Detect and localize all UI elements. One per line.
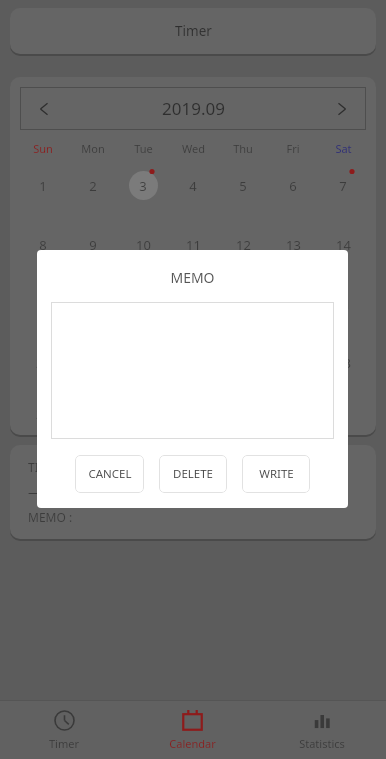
staticText: MEMO: [170, 268, 215, 287]
staticText: 6: [289, 177, 297, 195]
button[interactable]: DELETE: [159, 455, 227, 493]
staticText: —: [28, 484, 41, 500]
staticText: Mon: [81, 141, 105, 156]
staticText: Thu: [233, 141, 253, 156]
staticText: 19: [236, 295, 251, 313]
staticText: 10: [136, 236, 151, 254]
button[interactable]: 22: [18, 333, 68, 392]
staticText: WRITE: [259, 466, 294, 482]
button[interactable]: 16: [68, 274, 118, 333]
button[interactable]: 20: [268, 274, 318, 333]
button[interactable]: Timer: [0, 701, 128, 759]
button[interactable]: Next month: [318, 87, 366, 130]
staticText: Tue: [134, 141, 153, 156]
button[interactable]: 12: [218, 215, 268, 274]
staticText: Timer: [49, 736, 79, 751]
button[interactable]: 8: [18, 215, 68, 274]
staticText: 11: [186, 236, 201, 254]
staticText: 28: [336, 354, 351, 372]
button[interactable]: 13: [268, 215, 318, 274]
staticText: 14: [336, 236, 351, 254]
button[interactable]: 10: [118, 215, 168, 274]
button[interactable]: [318, 392, 368, 435]
button[interactable]: Statistics: [257, 701, 386, 759]
staticText: TIME :: [28, 459, 63, 475]
button[interactable]: WRITE: [242, 455, 310, 493]
button[interactable]: Timer: [10, 8, 376, 54]
staticText: 8: [39, 236, 47, 254]
staticText: Calendar: [169, 736, 216, 751]
button[interactable]: Calendar: [128, 701, 257, 759]
button[interactable]: 28: [318, 333, 368, 392]
button[interactable]: 29: [18, 392, 68, 435]
staticText: Timer: [175, 22, 212, 40]
staticText: 3: [139, 177, 147, 195]
button[interactable]: 3: [118, 156, 168, 215]
staticText: 18: [186, 295, 201, 313]
staticText: 1: [39, 177, 47, 195]
staticText: 21: [336, 295, 351, 313]
staticText: 12: [236, 236, 251, 254]
staticText: 22: [36, 354, 51, 372]
button[interactable]: 9: [68, 215, 118, 274]
staticText: 5: [239, 177, 247, 195]
staticText: 20: [286, 295, 301, 313]
button[interactable]: 17: [118, 274, 168, 333]
staticText: CANCEL: [88, 466, 132, 482]
button[interactable]: 15: [18, 274, 68, 333]
staticText: 17: [136, 295, 151, 313]
staticText: 7: [339, 177, 347, 195]
staticText: Wed: [182, 141, 205, 156]
staticText: 29: [36, 405, 51, 423]
staticText: 13: [286, 236, 301, 254]
button[interactable]: 11: [168, 215, 218, 274]
button[interactable]: 7: [318, 156, 368, 215]
button[interactable]: 14: [318, 215, 368, 274]
staticText: 4: [189, 177, 197, 195]
staticText: 9: [89, 236, 97, 254]
staticText: Statistics: [299, 736, 345, 751]
button[interactable]: 21: [318, 274, 368, 333]
button[interactable]: 18: [168, 274, 218, 333]
button[interactable]: Previous month: [20, 87, 68, 130]
staticText: DELETE: [173, 466, 213, 482]
staticText: 16: [86, 295, 101, 313]
button[interactable]: CANCEL: [75, 455, 144, 493]
button[interactable]: 19: [218, 274, 268, 333]
staticText: 2: [89, 177, 97, 195]
staticText: Sun: [33, 141, 53, 156]
staticText: 2019.09: [162, 97, 225, 120]
staticText: Fri: [286, 141, 300, 156]
staticText: 15: [36, 295, 51, 313]
staticText: Sat: [335, 141, 352, 156]
staticText: MEMO :: [28, 509, 73, 525]
button[interactable]: [51, 302, 334, 439]
